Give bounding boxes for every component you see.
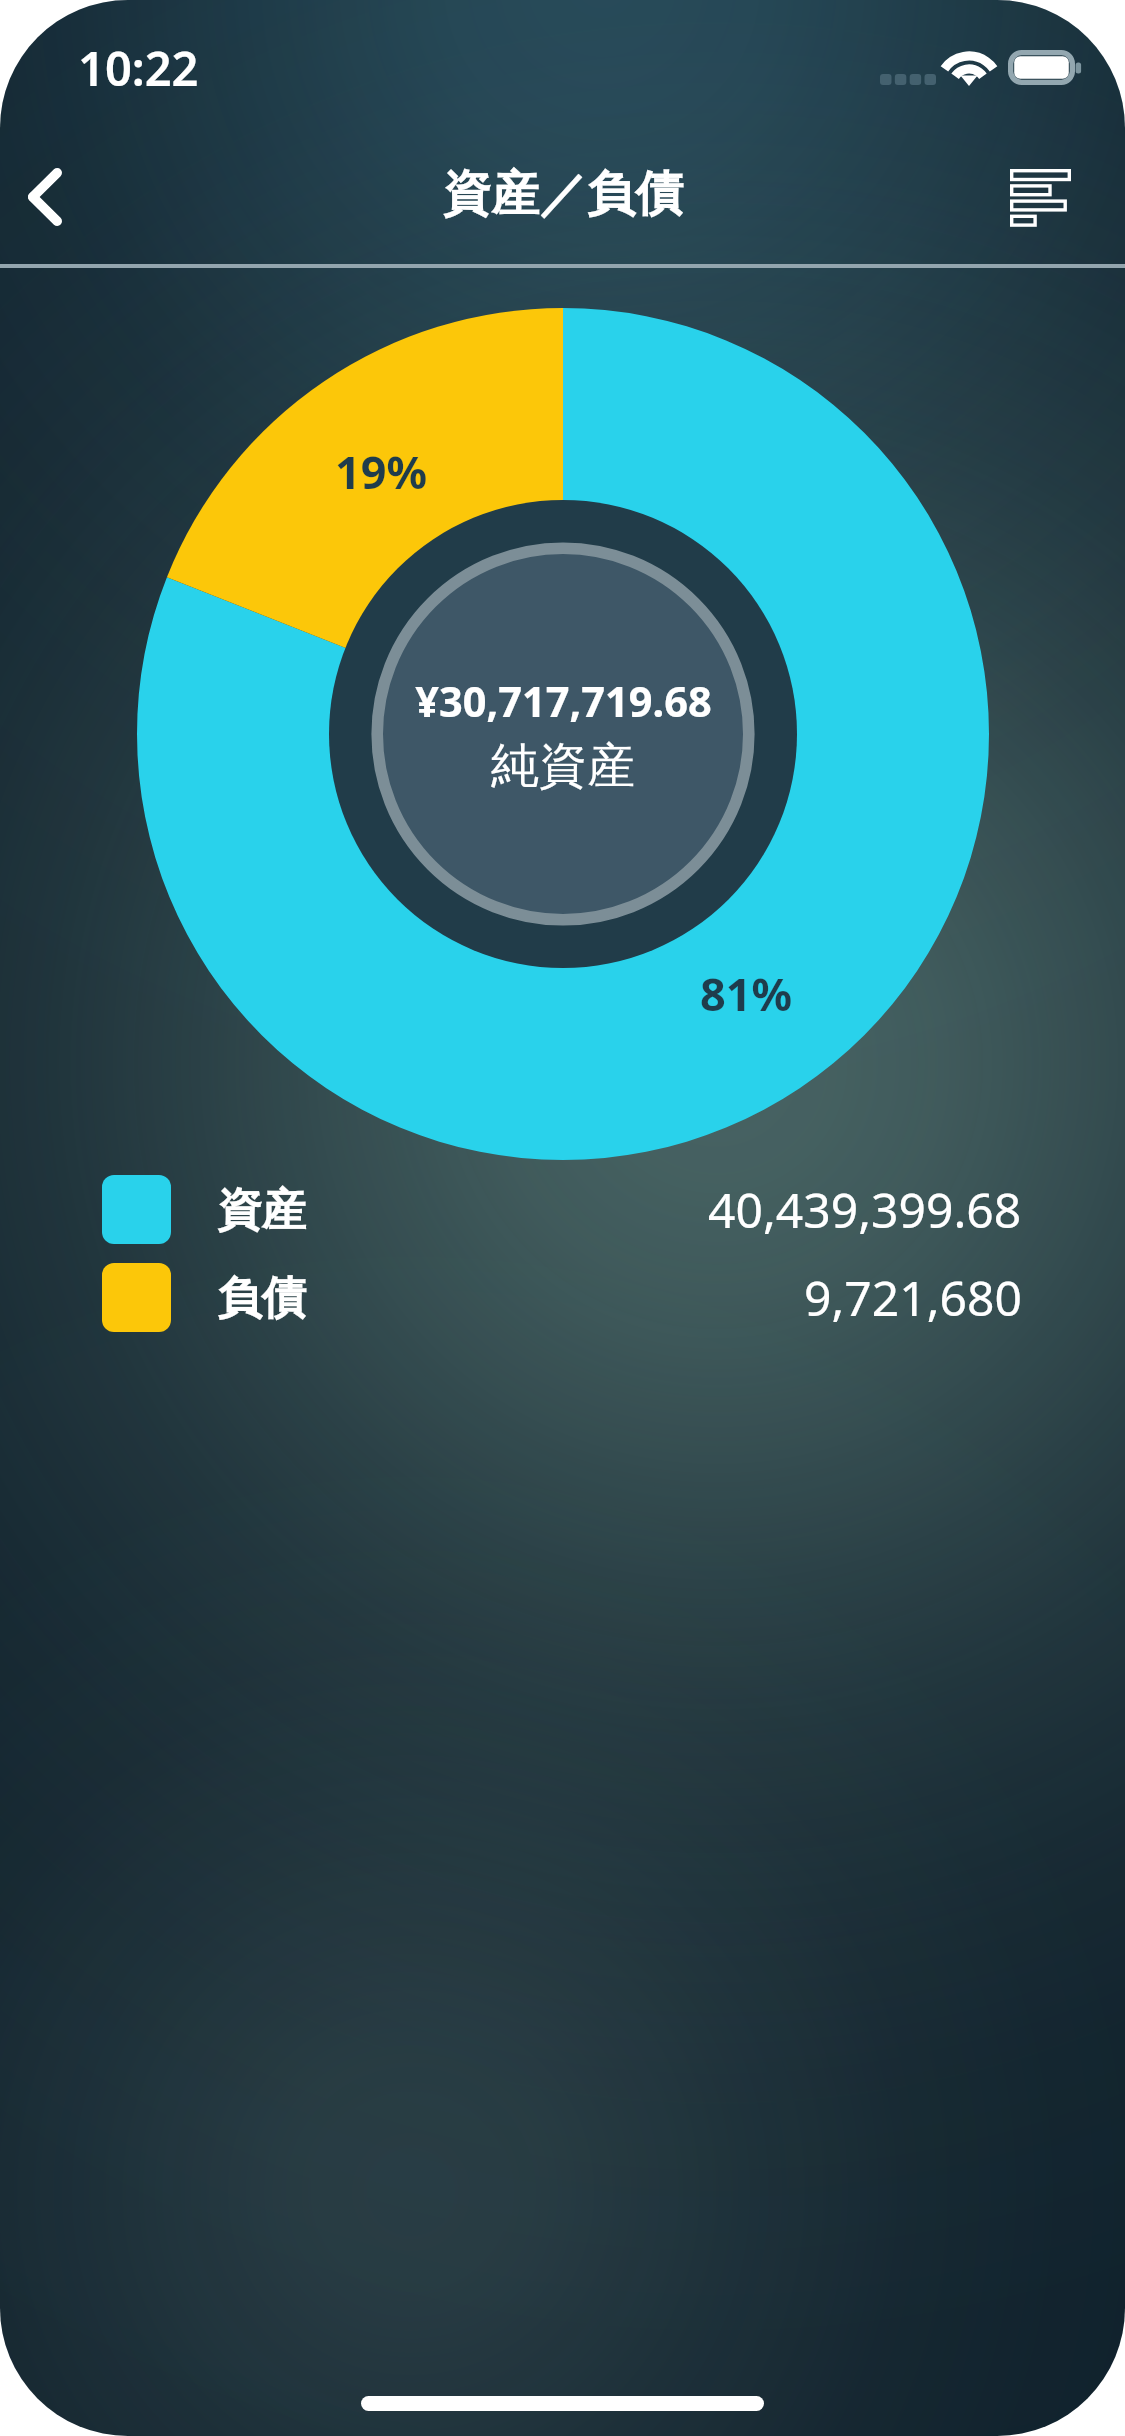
staticText: ¥30,717,719.68 [415, 673, 712, 730]
staticText: 資産／負債 [443, 164, 683, 224]
staticText: 9,721,680 [804, 1265, 1022, 1330]
button[interactable]: Report [1015, 132, 1125, 262]
staticText: 負債 [217, 1270, 306, 1326]
staticText: 19% [335, 441, 428, 502]
button[interactable]: 負債 [102, 1263, 1022, 1332]
staticText: 81% [700, 963, 793, 1024]
staticText: 資産 [217, 1182, 306, 1238]
staticText: 10:22 [78, 36, 199, 100]
staticText: 40,439,399.68 [708, 1177, 1022, 1242]
button[interactable]: 資産 [102, 1175, 1022, 1244]
button[interactable]: Back [0, 132, 120, 262]
staticText: 純資産 [491, 736, 635, 796]
